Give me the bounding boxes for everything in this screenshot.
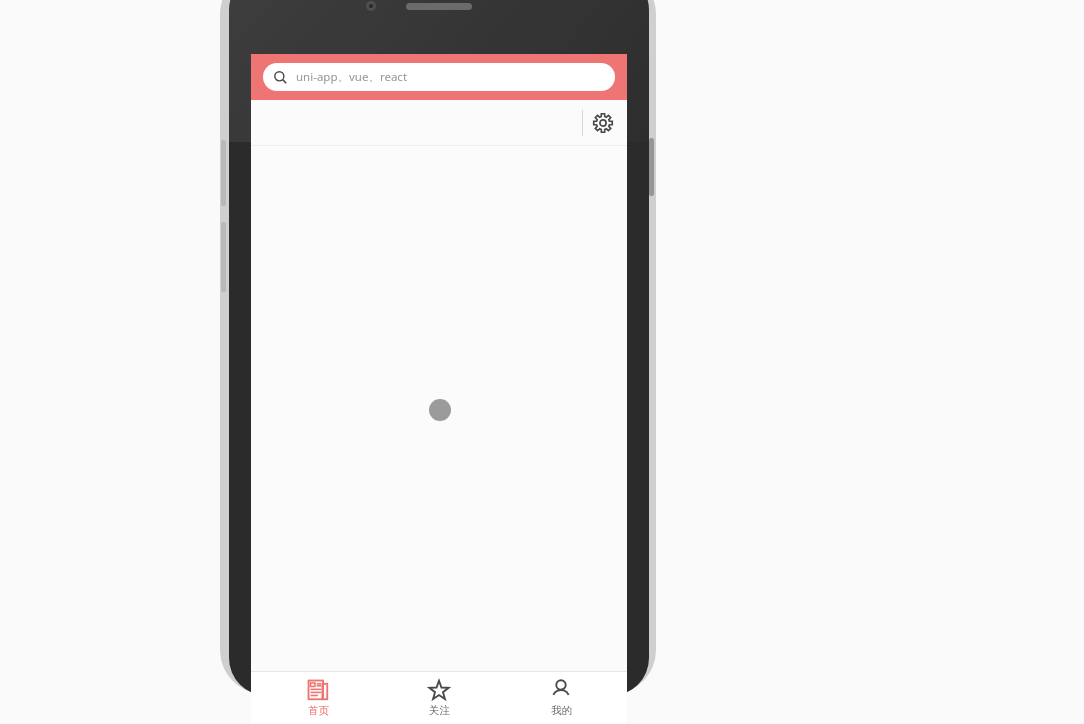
button[interactable]: Settings <box>588 108 618 138</box>
staticText: 我的 <box>551 704 572 717</box>
button[interactable]: uni-app、vue、react <box>263 63 615 91</box>
button[interactable]: 我的 <box>506 672 616 724</box>
staticText: 首页 <box>308 704 329 717</box>
button[interactable]: 首页 <box>263 672 373 724</box>
staticText: uni-app、vue、react <box>296 69 408 85</box>
button[interactable]: 关注 <box>384 672 494 724</box>
staticText: 关注 <box>429 704 450 717</box>
